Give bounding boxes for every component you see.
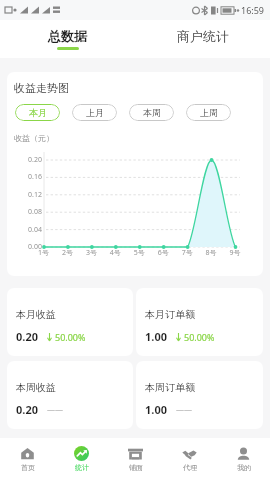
staticText: 本月 [29,107,47,118]
button[interactable]: 代理 [162,438,216,480]
button[interactable]: 上月 [72,104,117,121]
button[interactable]: 上周 [186,104,231,121]
button[interactable]: 本周 [129,104,174,121]
staticText: 50.00% [184,331,215,343]
button[interactable]: 商户统计 [135,20,270,58]
button[interactable]: 铺面 [108,438,162,480]
staticText: 本周收益 [16,381,56,394]
staticText: 0.20 [16,402,38,417]
staticText: 16:59 [241,4,265,16]
staticText: 本周订单额 [145,381,195,394]
staticText: 首页 [21,463,35,472]
staticText: 1.00 [145,402,167,417]
button[interactable]: 本周收益 [7,361,133,429]
button[interactable]: 总数据 [0,20,135,58]
staticText: 本月订单额 [145,308,195,321]
button[interactable]: 首页 [0,438,54,480]
button[interactable]: 本月订单额 [136,288,263,356]
staticText: 本周 [143,107,161,118]
staticText: 50.00% [55,331,86,343]
button[interactable]: 本月 [15,104,60,121]
staticText: —— [47,404,63,415]
staticText: 上周 [200,107,218,118]
staticText: 总数据 [48,28,87,44]
staticText: 0.20 [16,329,38,344]
staticText: 我的 [237,463,251,472]
staticText: 铺面 [129,463,143,472]
button[interactable]: 本周订单额 [136,361,263,429]
staticText: —— [176,404,192,415]
staticText: 代理 [183,463,197,472]
staticText: 本月收益 [16,308,56,321]
staticText: 收益（元） [14,133,54,143]
button[interactable]: 本月收益 [7,288,133,356]
staticText: 商户统计 [177,28,229,44]
button[interactable]: 统计 [54,438,108,480]
staticText: 收益走势图 [14,81,69,95]
staticText: 1.00 [145,329,167,344]
staticText: 统计 [75,463,89,472]
staticText: 上月 [86,107,104,118]
button[interactable]: 我的 [216,438,270,480]
